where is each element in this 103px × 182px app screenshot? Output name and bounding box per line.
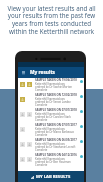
staticText: Ketterthill haematology — [35, 127, 65, 130]
staticText: SAMPLE TAKEN ON 12/02/2018 — [35, 93, 77, 97]
staticText: SAMPLE TAKEN ON 07/07/2017 — [35, 123, 77, 127]
staticText: Complete — [35, 148, 48, 151]
button[interactable]: SAMPLE TAKEN ON 19/06/2018 — [18, 78, 84, 93]
staticText: Ketterthill haematology — [35, 142, 65, 145]
staticText: Complete — [35, 163, 48, 166]
staticText: ordered by Dr Sergei Landsy — [35, 100, 71, 103]
staticText: ordered by Dr Ben Houtman — [35, 160, 71, 163]
button[interactable]: Menu — [18, 67, 84, 78]
staticText: ordered by Dr Marco Barbeaux — [35, 130, 74, 133]
button[interactable]: MY LAB RESULTS — [18, 171, 84, 182]
button[interactable]: Menu — [22, 71, 25, 74]
button[interactable]: SAMPLE TAKEN ON 12/02/2018 — [18, 93, 84, 108]
button[interactable]: SAMPLE TAKEN ON 04/12/2016 — [18, 153, 84, 168]
staticText: ordered by Dr Stephanie Lecroft — [35, 145, 76, 148]
staticText: MY LAB RESULTS — [36, 174, 71, 180]
button[interactable]: SAMPLE TAKEN ON 07/07/2017 — [18, 123, 84, 138]
staticText: Complete — [35, 103, 48, 106]
staticText: ordered by Dr Caroline Stark — [35, 115, 71, 118]
staticText: SAMPLE TAKEN ON 04/12/2016 — [35, 153, 77, 157]
staticText: Ketterthill haematology — [35, 157, 65, 160]
staticText: SAMPLE TAKEN ON 06/05/2017 — [35, 138, 77, 142]
staticText: My results — [30, 69, 55, 76]
button[interactable]: SAMPLE TAKEN ON 06/05/2017 — [18, 138, 84, 153]
staticText: Ketterthill haematology — [35, 82, 65, 85]
staticText: Complete — [35, 118, 48, 121]
staticText: Complete — [35, 88, 48, 91]
staticText: SAMPLE TAKEN ON 07/07/2018 — [35, 108, 77, 112]
button[interactable]: SAMPLE TAKEN ON 07/07/2018 — [18, 108, 84, 123]
staticText: SAMPLE TAKEN ON 19/06/2018 — [35, 78, 77, 82]
staticText: Ketterthill haematology — [35, 97, 65, 100]
staticText: View your latest results and all your re… — [7, 4, 96, 36]
staticText: Ketterthill haematology — [35, 112, 65, 115]
staticText: ordered by Dr Sophie Morton — [35, 85, 72, 88]
staticText: Complete — [35, 133, 48, 136]
